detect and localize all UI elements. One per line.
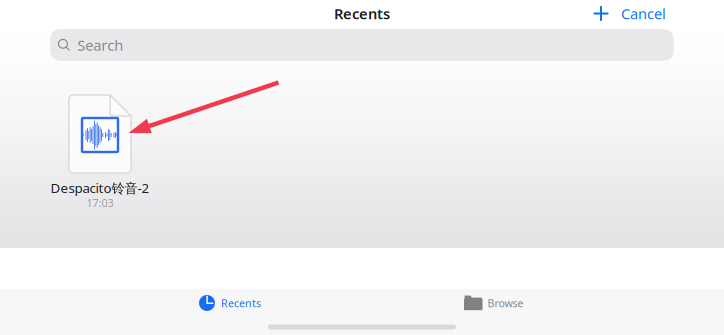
- staticText: Search: [77, 35, 123, 55]
- staticText: Recents: [221, 296, 261, 310]
- button[interactable]: Browse: [454, 288, 533, 318]
- staticText: Recents: [334, 3, 390, 23]
- button[interactable]: New: [586, 1, 616, 25]
- button[interactable]: Search: [50, 29, 674, 61]
- button[interactable]: Recents: [189, 288, 271, 318]
- staticText: Despacito铃音-2: [50, 179, 149, 197]
- button[interactable]: Despacito铃音-2: [35, 95, 165, 210]
- button[interactable]: Cancel: [616, 1, 671, 25]
- staticText: Cancel: [621, 4, 666, 23]
- staticText: 17:03: [86, 196, 113, 210]
- staticText: Browse: [487, 296, 523, 310]
